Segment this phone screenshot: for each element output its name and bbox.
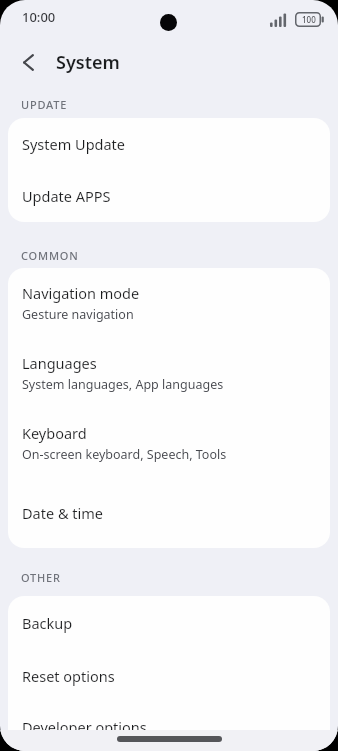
staticText: OTHER [21, 570, 61, 585]
staticText: Reset options [22, 666, 115, 686]
button[interactable] [117, 736, 222, 742]
staticText: Navigation mode [22, 283, 140, 303]
staticText: COMMON [21, 248, 79, 263]
staticText: 10:00 [22, 8, 56, 26]
button[interactable]: System Update [8, 118, 330, 170]
staticText: System Update [22, 134, 126, 154]
staticText: UPDATE [21, 97, 68, 112]
button[interactable]: Navigation mode [8, 268, 330, 338]
button[interactable]: Backup [8, 596, 330, 649]
staticText: Gesture navigation [22, 306, 134, 323]
staticText: Backup [22, 613, 73, 633]
staticText: Languages [22, 353, 97, 373]
staticText: Keyboard [22, 423, 87, 443]
staticText: System [56, 50, 120, 75]
staticText: 100 [302, 14, 316, 25]
staticText: On-screen keyboard, Speech, Tools [22, 446, 227, 463]
staticText: Date & time [22, 503, 103, 523]
staticText: Update APPS [22, 186, 111, 206]
staticText: Developer options [22, 717, 147, 737]
staticText: System languages, App languages [22, 376, 224, 393]
button[interactable]: Update APPS [8, 170, 330, 222]
button[interactable]: Reset options [8, 649, 330, 702]
button[interactable]: Languages [8, 338, 330, 408]
button[interactable]: Keyboard [8, 408, 330, 478]
button[interactable] [14, 48, 42, 76]
button[interactable]: Date & time [8, 478, 330, 548]
button[interactable]: Developer options [8, 702, 330, 751]
